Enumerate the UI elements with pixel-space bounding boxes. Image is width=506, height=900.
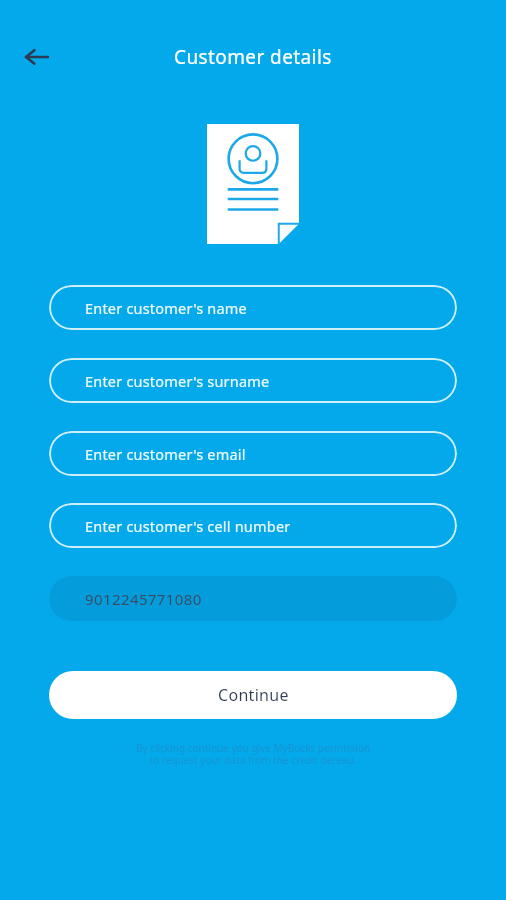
button[interactable]: Back [14, 34, 60, 80]
staticText: Enter customer's email [85, 444, 246, 464]
button[interactable]: Enter customer's email [49, 431, 457, 476]
button[interactable]: 9012245771080 [49, 576, 457, 621]
staticText: Enter customer's surname [85, 371, 270, 391]
button[interactable]: Enter customer's name [49, 285, 457, 330]
staticText: Continue [218, 684, 289, 706]
staticText: By clicking continue you give MyBucks pe… [52, 741, 454, 767]
button[interactable]: Continue [49, 671, 457, 719]
staticText: Enter customer's cell number [85, 516, 291, 536]
staticText: Enter customer's name [85, 298, 247, 318]
button[interactable]: Enter customer's cell number [49, 503, 457, 548]
staticText: Customer details [174, 44, 332, 70]
staticText: 9012245771080 [85, 589, 202, 609]
button[interactable]: Enter customer's surname [49, 358, 457, 403]
